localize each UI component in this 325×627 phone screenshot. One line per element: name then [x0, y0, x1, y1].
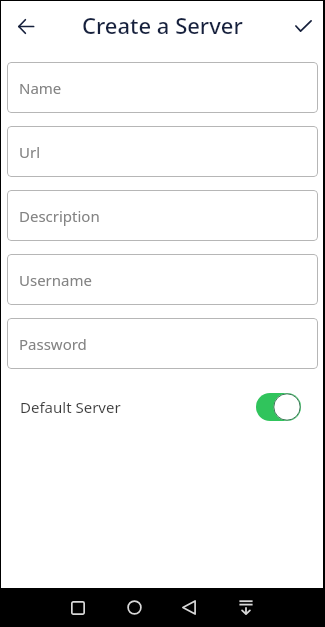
staticText: Password: [19, 334, 87, 354]
button[interactable]: Password: [7, 318, 318, 369]
button[interactable]: Default Server: [7, 383, 318, 431]
staticText: Username: [19, 270, 92, 290]
staticText: Create a Server: [82, 10, 243, 40]
staticText: Name: [19, 78, 62, 98]
button[interactable]: Name: [7, 62, 318, 113]
button[interactable]: Home: [118, 588, 150, 627]
button[interactable]: Url: [7, 126, 318, 177]
button[interactable]: Back: [173, 588, 205, 627]
button[interactable]: Hide keyboard: [230, 588, 262, 627]
button[interactable]: Username: [7, 254, 318, 305]
staticText: Description: [19, 206, 100, 226]
button[interactable]: Description: [7, 190, 318, 241]
staticText: Url: [19, 142, 41, 162]
button[interactable]: Recent apps: [62, 588, 94, 627]
button[interactable]: Navigate back: [4, 4, 48, 48]
button[interactable]: Default Server on: [256, 393, 301, 421]
button[interactable]: Save server: [281, 4, 325, 48]
staticText: Default Server: [20, 397, 121, 417]
